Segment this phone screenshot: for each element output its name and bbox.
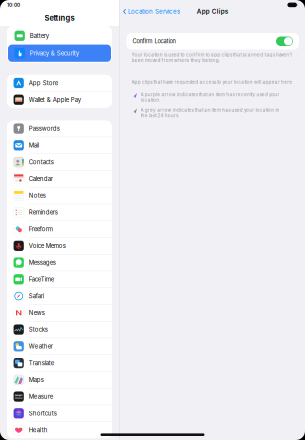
staticText: Health (29, 426, 48, 434)
button[interactable]: Wallet & Apple Pay (7, 91, 112, 108)
button[interactable]: Reminders (7, 204, 112, 221)
staticText: News (29, 309, 45, 316)
staticText: Freeform (29, 225, 53, 233)
button[interactable]: Maps (7, 372, 112, 388)
button[interactable]: Notes (7, 187, 112, 204)
button[interactable]: Freeform (7, 221, 112, 237)
staticText: Wallet & Apple Pay (29, 96, 81, 103)
staticText: Safari (29, 292, 44, 300)
staticText: App clips that have requested access to … (131, 79, 293, 85)
staticText: Privacy & Security (30, 50, 79, 57)
staticText: Shortcuts (29, 410, 57, 417)
button[interactable]: Shortcuts (7, 405, 112, 421)
staticText: FaceTime (29, 276, 54, 283)
staticText: Confirm Location (132, 38, 175, 45)
staticText: Contacts (29, 158, 54, 166)
staticText: Weather (29, 343, 53, 350)
button[interactable]: Contacts (7, 154, 112, 170)
button[interactable]: Privacy & Security (8, 45, 111, 62)
button[interactable]: FaceTime (7, 271, 112, 287)
staticText: Messages (29, 259, 56, 266)
staticText: Measure (29, 393, 53, 400)
staticText: Your location is used to confirm to app … (131, 52, 291, 63)
button[interactable]: App Store (7, 75, 112, 91)
staticText: App Clips (197, 8, 228, 15)
staticText: Battery (30, 32, 49, 39)
staticText: Maps (29, 376, 44, 383)
staticText: Voice Memos (29, 242, 66, 249)
staticText: A grey arrow indicates that an item has … (140, 107, 279, 118)
button[interactable]: Stocks (7, 321, 112, 338)
button[interactable]: Battery (8, 27, 111, 45)
staticText: Settings (44, 13, 74, 22)
button[interactable]: Location Services (123, 8, 180, 15)
button[interactable]: Messages (7, 254, 112, 271)
staticText: Reminders (29, 209, 58, 216)
button[interactable]: Passwords (7, 120, 112, 137)
staticText: Location Services (128, 8, 180, 15)
button[interactable]: Weather (7, 338, 112, 354)
staticText: App Store (29, 79, 58, 87)
button[interactable]: Mail (7, 137, 112, 154)
button[interactable]: Voice Memos (7, 238, 112, 254)
staticText: Stocks (29, 326, 48, 333)
button[interactable]: Safari (7, 288, 112, 304)
button[interactable]: Calendar (7, 171, 112, 187)
staticText: Passwords (29, 125, 60, 132)
staticText: Calendar (29, 175, 53, 182)
button[interactable]: Confirm Location (276, 36, 293, 46)
staticText: Mail (29, 142, 39, 149)
button[interactable]: Translate (7, 355, 112, 371)
button[interactable]: News (7, 305, 112, 321)
staticText: 10:00 (7, 2, 20, 8)
staticText: Notes (29, 192, 46, 199)
staticText: Translate (29, 359, 54, 367)
staticText: A purple arrow indicates that an item ha… (140, 92, 279, 103)
button[interactable]: Health (7, 422, 112, 438)
button[interactable]: Measure (7, 388, 112, 405)
